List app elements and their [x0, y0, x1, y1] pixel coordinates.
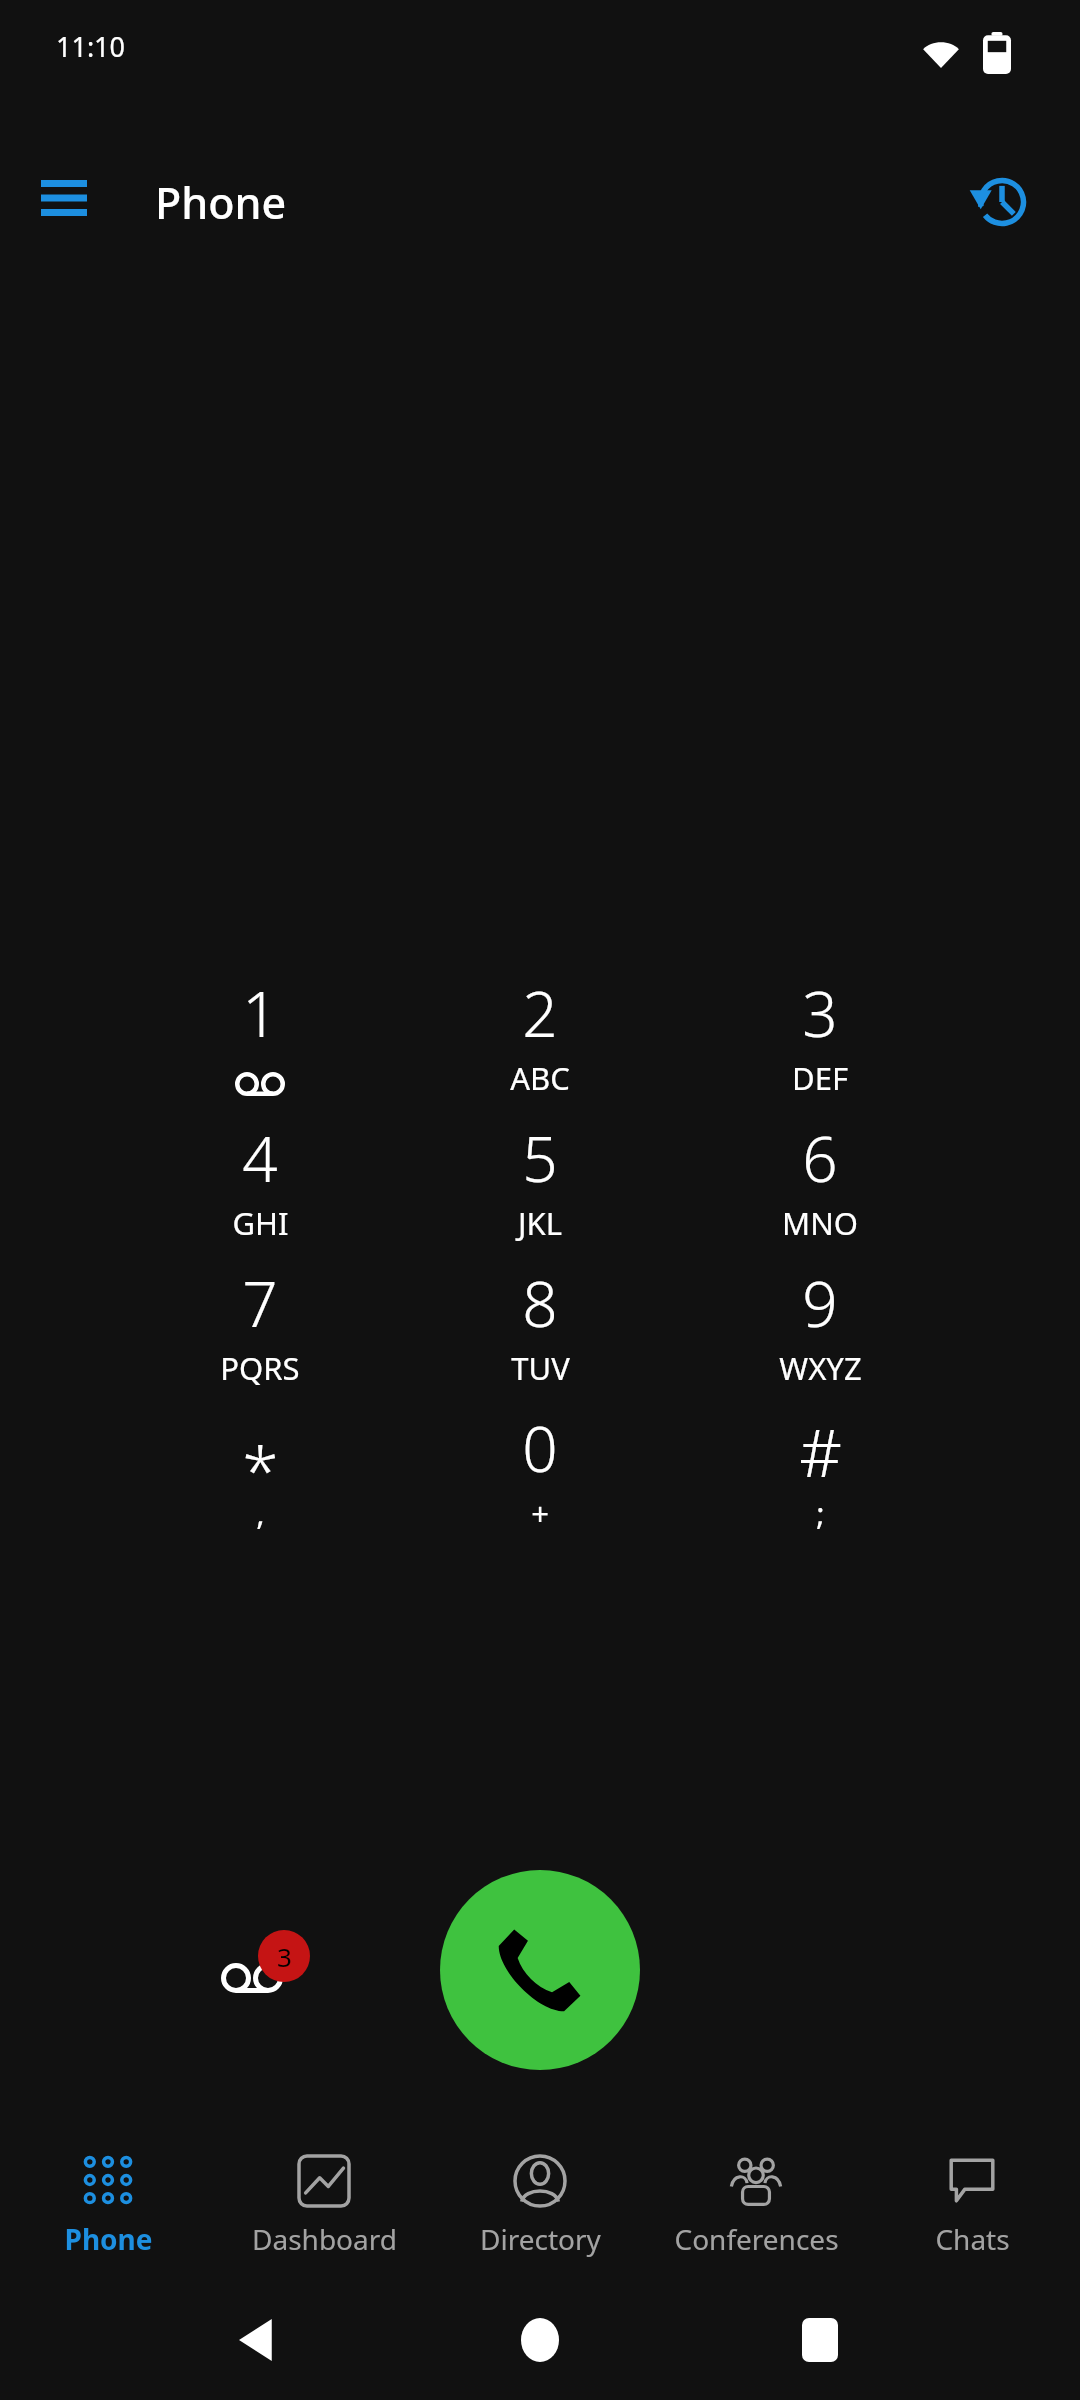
staticText: Conferences: [674, 2220, 839, 2258]
staticText: 7: [242, 1261, 278, 1345]
staticText: MNO: [782, 1202, 858, 1244]
button[interactable]: Call: [440, 1870, 640, 2070]
button[interactable]: Phone: [155, 173, 287, 232]
staticText: 3: [277, 1939, 292, 1974]
button[interactable]: Directory: [432, 2140, 648, 2270]
button[interactable]: 3: [700, 971, 940, 1116]
staticText: GHI: [232, 1202, 289, 1244]
button[interactable]: Open navigation menu: [30, 164, 98, 232]
staticText: 11:10: [56, 28, 126, 65]
button[interactable]: Dashboard: [216, 2140, 432, 2270]
staticText: TUV: [511, 1347, 570, 1389]
staticText: 2: [522, 971, 558, 1055]
staticText: +: [531, 1492, 549, 1534]
button[interactable]: #: [700, 1406, 940, 1551]
button[interactable]: Call history: [966, 166, 1038, 238]
staticText: ;: [816, 1492, 825, 1534]
button[interactable]: Chats: [864, 2140, 1080, 2270]
button[interactable]: Phone: [0, 2140, 216, 2270]
staticText: 5: [522, 1116, 558, 1200]
staticText: *: [242, 1424, 279, 1514]
button[interactable]: 8: [420, 1261, 660, 1406]
button[interactable]: 5: [420, 1116, 660, 1261]
staticText: 1: [242, 971, 278, 1055]
staticText: PQRS: [220, 1347, 300, 1389]
staticText: 4: [242, 1116, 278, 1200]
button[interactable]: Back: [200, 2300, 320, 2380]
button[interactable]: 6: [700, 1116, 940, 1261]
staticText: 9: [802, 1261, 838, 1345]
button[interactable]: 1: [140, 971, 380, 1116]
button[interactable]: 9: [700, 1261, 940, 1406]
button[interactable]: 2: [420, 971, 660, 1116]
button[interactable]: Voicemail, 3 new: [180, 1890, 340, 2050]
staticText: WXYZ: [779, 1347, 862, 1389]
staticText: Phone: [64, 2220, 153, 2258]
staticText: 0: [522, 1406, 558, 1490]
staticText: Dashboard: [252, 2220, 397, 2258]
staticText: DEF: [792, 1057, 848, 1099]
staticText: Chats: [935, 2220, 1010, 2258]
staticText: #: [799, 1406, 842, 1496]
staticText: ,: [256, 1492, 265, 1534]
staticText: ABC: [510, 1057, 570, 1099]
button[interactable]: *: [140, 1406, 380, 1551]
staticText: Directory: [480, 2220, 601, 2258]
button[interactable]: 7: [140, 1261, 380, 1406]
staticText: JKL: [518, 1202, 562, 1244]
staticText: 6: [802, 1116, 838, 1200]
button[interactable]: Recent apps: [760, 2300, 880, 2380]
button[interactable]: 4: [140, 1116, 380, 1261]
button[interactable]: Home: [480, 2300, 600, 2380]
staticText: 3: [802, 971, 838, 1055]
staticText: 8: [522, 1261, 558, 1345]
button[interactable]: Conferences: [648, 2140, 864, 2270]
button[interactable]: 0: [420, 1406, 660, 1551]
